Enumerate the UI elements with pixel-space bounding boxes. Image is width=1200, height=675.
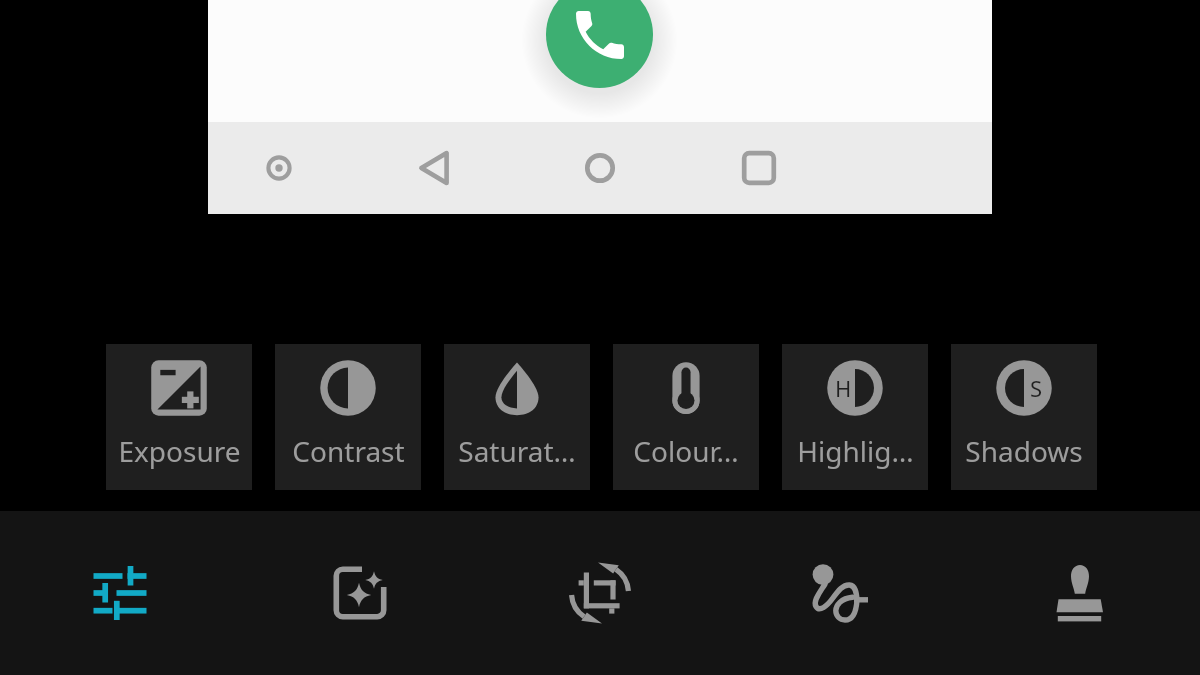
button[interactable]: Adjust: [0, 511, 240, 675]
button[interactable]: H: [782, 344, 928, 490]
button[interactable]: Exposure: [106, 344, 252, 490]
button[interactable]: Call: [546, 0, 653, 88]
button[interactable]: Saturat…: [444, 344, 590, 490]
staticText: S: [1030, 373, 1043, 403]
staticText: Colour…: [633, 432, 739, 470]
staticText: Saturat…: [458, 432, 576, 470]
staticText: Exposure: [118, 432, 241, 470]
button[interactable]: Stamp: [960, 511, 1200, 675]
button[interactable]: Enhance: [240, 511, 480, 675]
staticText: Highlig…: [797, 432, 914, 470]
button[interactable]: Assistant: [256, 145, 302, 191]
button[interactable]: Home: [577, 145, 623, 191]
button[interactable]: Back: [418, 145, 464, 191]
staticText: Shadows: [965, 432, 1083, 470]
button[interactable]: Crop: [480, 511, 720, 675]
staticText: Contrast: [292, 432, 405, 470]
button[interactable]: Markup: [720, 511, 960, 675]
staticText: H: [835, 373, 852, 403]
button[interactable]: Colour…: [613, 344, 759, 490]
button[interactable]: Recent apps: [736, 145, 782, 191]
button[interactable]: S: [951, 344, 1097, 490]
button[interactable]: Contrast: [275, 344, 421, 490]
